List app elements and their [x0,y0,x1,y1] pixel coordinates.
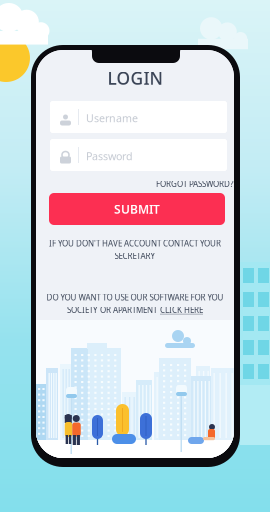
button[interactable]: FORGOT PASSWORD? [50,179,233,189]
staticText: CLICK HERE [160,305,203,315]
staticText: Username [86,111,138,125]
staticText: SUBMIT [114,201,160,217]
staticText: IF YOU DON'T HAVE ACCOUNT CONTACT YOUR [49,238,221,249]
staticText: FORGOT PASSWORD? [156,179,233,189]
staticText: SECRETARY [114,251,155,261]
staticText: Password [86,149,133,163]
button[interactable]: CLICK HERE [160,305,203,315]
staticText: DO YOU WANT TO USE OUR SOFTWARE FOR YOU [46,292,223,303]
button[interactable]: SUBMIT [49,193,225,225]
staticText: LOGIN [107,66,162,89]
staticText: SOCIETY OR APARTMENT [67,305,157,315]
